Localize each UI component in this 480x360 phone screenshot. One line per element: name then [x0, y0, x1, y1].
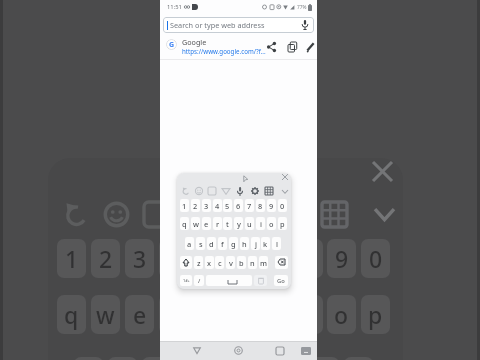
button[interactable]	[236, 187, 244, 196]
button[interactable]: w	[191, 217, 200, 230]
button[interactable]: 1	[57, 239, 86, 278]
button[interactable]	[267, 42, 276, 52]
button[interactable]: z	[194, 256, 203, 269]
button[interactable]: 2	[91, 239, 120, 278]
button[interactable]: s	[108, 357, 137, 360]
button[interactable]: 3	[125, 239, 154, 278]
staticText: b	[239, 258, 244, 268]
button[interactable]	[275, 256, 288, 269]
button[interactable]: p	[361, 295, 390, 334]
button[interactable]: u	[245, 217, 254, 230]
button[interactable]: 3	[202, 199, 211, 212]
button[interactable]	[265, 187, 273, 195]
button[interactable]: /	[194, 275, 204, 286]
button[interactable]: Go	[274, 275, 288, 286]
button[interactable]	[64, 202, 89, 227]
button[interactable]: d	[142, 357, 171, 360]
button[interactable]	[306, 42, 315, 52]
button[interactable]	[104, 202, 129, 227]
button[interactable]: 8	[256, 199, 265, 212]
button[interactable]: c	[215, 256, 224, 269]
button[interactable]: 4	[213, 199, 222, 212]
button[interactable]: n	[248, 256, 257, 269]
button[interactable]: s	[196, 237, 205, 250]
button[interactable]: b	[237, 256, 246, 269]
button[interactable]	[288, 42, 297, 52]
button[interactable]	[193, 347, 201, 354]
button[interactable]	[276, 347, 284, 355]
button[interactable]: 9	[327, 239, 356, 278]
button[interactable]: k	[310, 357, 339, 360]
button[interactable]: 5	[223, 199, 232, 212]
button[interactable]: 5	[192, 239, 221, 278]
button[interactable]	[180, 256, 192, 269]
button[interactable]: q	[180, 217, 189, 230]
button[interactable]	[322, 202, 347, 227]
button[interactable]: l	[272, 237, 281, 250]
button[interactable]	[195, 187, 203, 195]
button[interactable]: 1#+	[180, 275, 192, 286]
button[interactable]	[144, 202, 169, 227]
button[interactable]	[301, 347, 311, 355]
button[interactable]: x	[205, 256, 214, 269]
button[interactable]: r	[213, 217, 222, 230]
button[interactable]	[254, 275, 267, 286]
button[interactable]: q	[57, 295, 86, 334]
button[interactable]: 1	[180, 199, 189, 212]
button[interactable]: t	[223, 217, 232, 230]
button[interactable]: h	[240, 237, 249, 250]
button[interactable]: o	[327, 295, 356, 334]
button[interactable]: a	[74, 357, 103, 360]
button[interactable]: Search or type web address	[163, 17, 314, 33]
button[interactable]: i	[294, 295, 323, 334]
button[interactable]: 2	[191, 199, 200, 212]
button[interactable]	[188, 202, 213, 227]
button[interactable]: G	[160, 36, 317, 59]
button[interactable]: v	[226, 256, 235, 269]
button[interactable]	[301, 20, 309, 30]
button[interactable]: j	[251, 237, 260, 250]
button[interactable]: 6	[226, 239, 255, 278]
button[interactable]	[251, 187, 259, 195]
button[interactable]	[206, 275, 252, 286]
button[interactable]	[375, 206, 394, 222]
button[interactable]: 4	[159, 239, 188, 278]
button[interactable]: a	[185, 237, 194, 250]
button[interactable]: f	[218, 237, 227, 250]
button[interactable]: e	[202, 217, 211, 230]
button[interactable]	[222, 187, 230, 195]
button[interactable]: m	[259, 256, 268, 269]
button[interactable]: w	[91, 295, 120, 334]
button[interactable]	[234, 346, 243, 355]
button[interactable]: 9	[267, 199, 276, 212]
button[interactable]: 7	[245, 199, 254, 212]
button[interactable]	[231, 200, 256, 228]
button[interactable]	[282, 189, 288, 194]
button[interactable]	[182, 187, 190, 195]
button[interactable]: o	[267, 217, 276, 230]
button[interactable]	[278, 202, 303, 227]
button[interactable]: 8	[294, 239, 323, 278]
button[interactable]: k	[261, 237, 270, 250]
button[interactable]	[208, 187, 216, 195]
button[interactable]: r	[159, 295, 188, 334]
button[interactable]: g	[229, 237, 238, 250]
button[interactable]: l	[344, 357, 373, 360]
button[interactable]: i	[256, 217, 265, 230]
button[interactable]: 7	[260, 239, 289, 278]
button[interactable]: p	[278, 217, 287, 230]
button[interactable]: 0	[361, 239, 390, 278]
button[interactable]: 0	[278, 199, 287, 212]
button[interactable]: d	[207, 237, 216, 250]
button[interactable]: y	[234, 217, 243, 230]
button[interactable]: e	[125, 295, 154, 334]
button[interactable]: 6	[234, 199, 243, 212]
